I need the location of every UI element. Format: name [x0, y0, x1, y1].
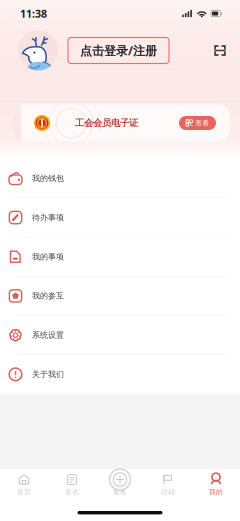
- button[interactable]: 系统设置: [0, 316, 240, 355]
- button[interactable]: 我的参互: [0, 277, 240, 316]
- button[interactable]: 首页: [0, 469, 48, 498]
- staticText: 我的事项: [32, 252, 64, 262]
- staticText: 点击登录/注册: [80, 42, 157, 58]
- staticText: 系统设置: [32, 330, 64, 340]
- button[interactable]: 扫一扫: [209, 39, 231, 61]
- button[interactable]: 点击登录/注册: [68, 37, 169, 63]
- staticText: 11:38: [20, 6, 47, 21]
- staticText: 资讯: [65, 488, 79, 496]
- button[interactable]: 我的: [192, 469, 240, 498]
- staticText: 查看: [195, 119, 209, 127]
- button[interactable]: 待办事项: [0, 198, 240, 237]
- button[interactable]: 资讯: [48, 469, 96, 498]
- button[interactable]: 我的钱包: [0, 159, 240, 198]
- button[interactable]: 我的事项: [0, 237, 240, 277]
- staticText: 我的钱包: [32, 173, 64, 183]
- staticText: 工会会员电子证: [75, 117, 138, 129]
- staticText: 服务: [113, 488, 127, 496]
- staticText: 活动: [161, 488, 175, 496]
- staticText: 我的参互: [32, 291, 64, 301]
- staticText: 我的: [209, 488, 223, 496]
- button[interactable]: 关于我们: [0, 355, 240, 394]
- staticText: 首页: [17, 488, 31, 496]
- button[interactable]: 活动: [144, 469, 192, 498]
- button[interactable]: 工会会员电子证: [0, 104, 240, 142]
- staticText: 关于我们: [32, 369, 64, 379]
- staticText: 待办事项: [32, 213, 64, 222]
- button[interactable]: 服务: [96, 469, 144, 498]
